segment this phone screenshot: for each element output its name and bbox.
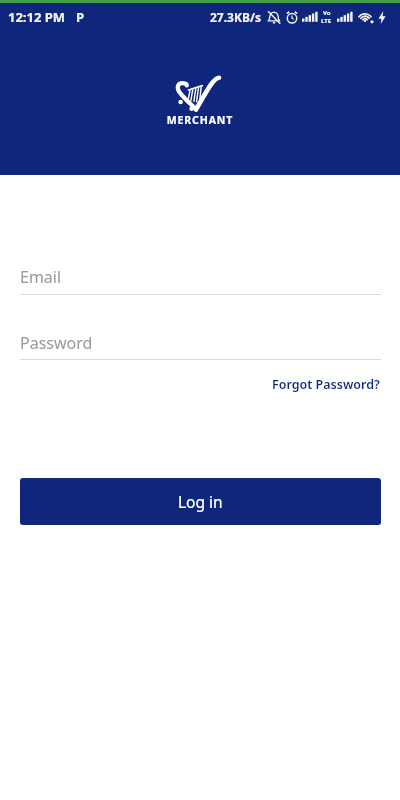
button[interactable]: Forgot Password? [272,376,380,393]
staticText: Log in [178,491,223,512]
button[interactable] [20,260,381,296]
staticText: Email [20,266,62,288]
staticText: Forgot Password? [272,376,380,393]
button[interactable]: Log in [20,478,381,525]
staticText: Vo [323,9,331,17]
staticText: LTE [321,17,332,25]
button[interactable] [20,326,381,361]
staticText: Password [20,332,93,354]
staticText: MERCHANT [0,113,400,127]
staticText: P [76,8,85,26]
staticText: 12:12 PM [8,8,66,26]
staticText: 27.3KB/s [210,9,261,25]
